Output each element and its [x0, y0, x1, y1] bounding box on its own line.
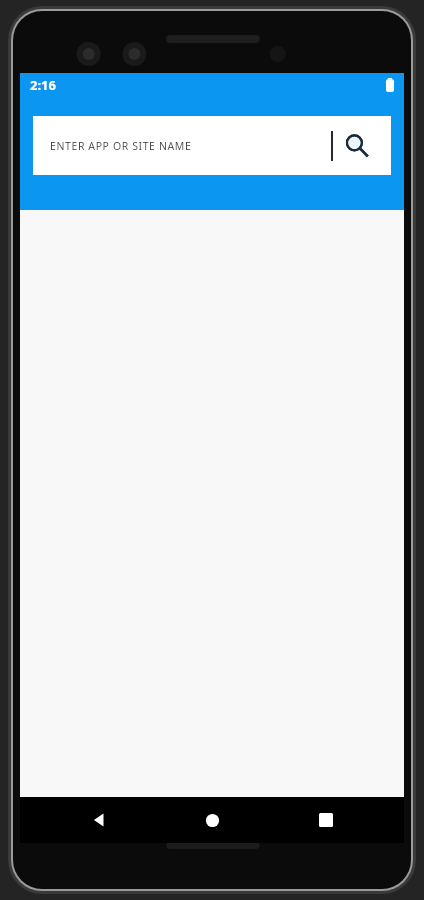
button[interactable]: Recent apps — [291, 797, 361, 843]
button[interactable]: ENTER APP OR SITE NAME — [33, 116, 391, 175]
staticText: 2:16 — [30, 76, 56, 94]
staticText: ENTER APP OR SITE NAME — [50, 139, 331, 153]
button[interactable]: Back — [64, 797, 134, 843]
button[interactable]: Home — [177, 797, 247, 843]
button[interactable]: Search — [333, 122, 381, 170]
